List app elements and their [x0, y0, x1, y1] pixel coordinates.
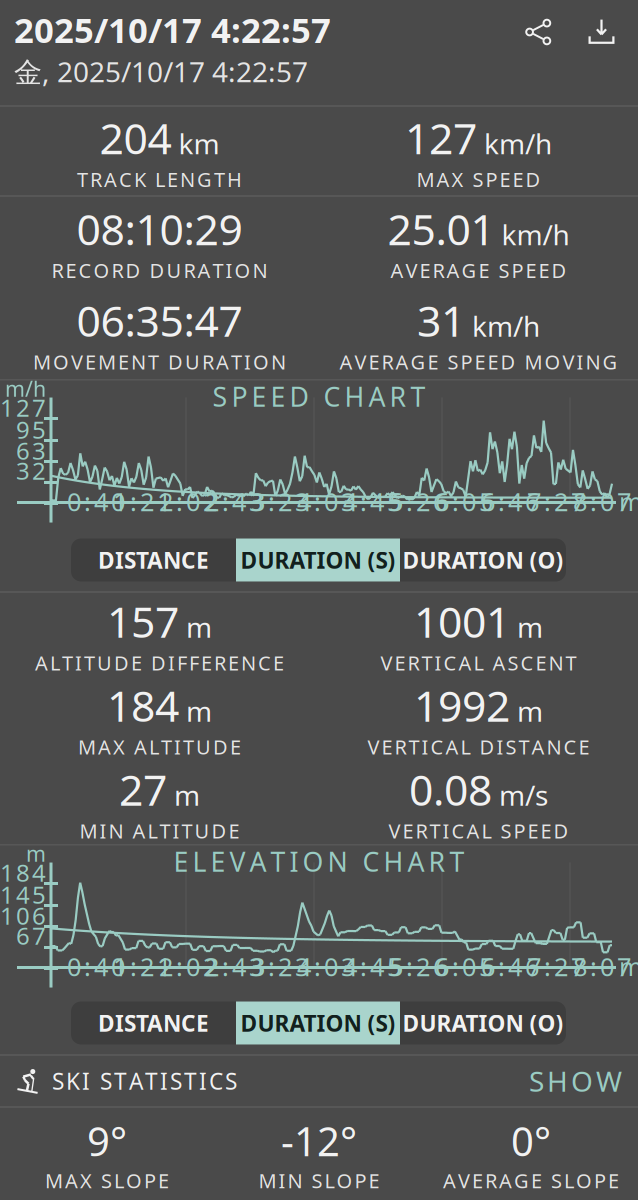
staticText: T R A C K L E N G T H — [77, 166, 242, 193]
staticText: 27 — [119, 761, 167, 818]
staticText: m — [174, 776, 200, 813]
staticText: E L E V A T I O N C H A R T — [173, 844, 464, 879]
staticText: DURATION (O) — [402, 1008, 563, 1038]
staticText: 金, 2025/10/17 4:22:57 — [14, 53, 308, 90]
button[interactable]: DURATION (S) — [236, 1001, 400, 1044]
button[interactable]: S K I S T A T I S T I C S — [0, 1055, 638, 1106]
staticText: 2 : 4 3 — [205, 950, 263, 983]
staticText: 6 : 0 5 — [435, 950, 493, 983]
button[interactable]: Download — [577, 7, 626, 56]
staticText: 31 — [417, 292, 465, 349]
staticText: 3 : 2 3 — [251, 950, 309, 983]
staticText: M A X S P E E D — [416, 166, 540, 193]
staticText: R E C O R D D U R A T I O N — [51, 257, 267, 284]
staticText: 1001 — [414, 593, 510, 650]
staticText: m — [26, 839, 46, 868]
staticText: 6 : 4 6 — [481, 485, 539, 518]
staticText: 1992 — [414, 677, 510, 734]
staticText: 25.01 — [387, 200, 494, 257]
staticText: M O V E M E N T D U R A T I O N — [33, 349, 286, 375]
staticText: A V E R A G E S P E E D — [390, 257, 566, 284]
staticText: 7 : 2 7 — [527, 485, 585, 518]
staticText: 1 0 6 — [0, 900, 46, 931]
staticText: 1 : 2 1 — [113, 950, 171, 983]
staticText: A V E R A G E S L O P E — [443, 1167, 619, 1194]
staticText: V E R T I C A L A S C E N T — [380, 650, 576, 676]
button[interactable]: DURATION (O) — [400, 538, 566, 581]
staticText: 2 : 0 2 — [159, 485, 217, 518]
staticText: 0° — [511, 1114, 551, 1167]
staticText: m — [619, 485, 638, 518]
staticText: S H O W — [529, 1062, 622, 1100]
staticText: km/h — [501, 216, 569, 253]
staticText: 0.08 — [409, 761, 492, 818]
staticText: -12° — [281, 1114, 357, 1167]
staticText: 5 : 2 6 — [389, 485, 447, 518]
staticText: 6 : 4 6 — [481, 950, 539, 983]
staticText: 2 : 0 2 — [159, 950, 217, 983]
staticText: 7 : 2 7 — [527, 950, 585, 983]
staticText: 06:35:47 — [76, 292, 242, 349]
staticText: 0 : 4 0 — [67, 485, 125, 518]
staticText: M A X S L O P E — [45, 1167, 169, 1194]
staticText: 1 4 5 — [0, 879, 46, 910]
staticText: 0 : 4 0 — [67, 950, 125, 983]
staticText: DURATION (S) — [240, 1008, 395, 1038]
staticText: A V E R A G E S P E E D M O V I N G — [339, 349, 617, 375]
staticText: 6 7 — [16, 920, 46, 951]
staticText: 5 : 2 6 — [389, 950, 447, 983]
staticText: 3 2 — [16, 455, 46, 486]
staticText: 4 : 4 5 — [343, 950, 401, 983]
staticText: 4 : 0 3 — [297, 950, 355, 983]
staticText: 2 : 4 3 — [205, 485, 263, 518]
staticText: m/s — [499, 776, 548, 813]
staticText: 4 : 0 3 — [297, 485, 355, 518]
button[interactable]: DURATION (S) — [236, 538, 400, 581]
staticText: 1 : 2 1 — [113, 485, 171, 518]
staticText: km — [178, 125, 219, 162]
staticText: 1 8 4 — [0, 857, 46, 888]
staticText: m — [517, 608, 543, 645]
staticText: km/h — [484, 125, 552, 162]
staticText: m/h — [5, 374, 46, 403]
staticText: DURATION (O) — [402, 545, 563, 575]
staticText: M A X A L T I T U D E — [78, 734, 241, 760]
staticText: m — [619, 950, 638, 983]
staticText: m — [517, 692, 543, 729]
button[interactable]: Share — [514, 7, 563, 56]
staticText: 8 : 0 7 — [573, 950, 631, 983]
staticText: 8 : 0 7 — [573, 485, 631, 518]
button[interactable]: DISTANCE — [71, 538, 236, 581]
staticText: 1 2 7 — [0, 392, 46, 423]
staticText: m — [186, 692, 212, 729]
staticText: 6 : 0 5 — [435, 485, 493, 518]
staticText: V E R T I C A L S P E E D — [388, 818, 568, 844]
staticText: S K I S T A T I S T I C S — [52, 1066, 237, 1096]
staticText: 9° — [87, 1114, 127, 1167]
staticText: m — [186, 608, 212, 645]
staticText: M I N S L O P E — [258, 1167, 379, 1194]
staticText: 184 — [107, 677, 179, 734]
staticText: 3 : 2 3 — [251, 485, 309, 518]
staticText: V E R T I C A L D I S T A N C E — [367, 734, 589, 760]
staticText: DURATION (S) — [240, 545, 395, 575]
staticText: km/h — [472, 307, 540, 344]
button[interactable]: DURATION (O) — [400, 1001, 566, 1044]
button[interactable]: DISTANCE — [71, 1001, 236, 1044]
staticText: M I N A L T I T U D E — [79, 818, 239, 844]
staticText: 08:10:29 — [76, 200, 242, 257]
staticText: 9 5 — [16, 414, 46, 445]
staticText: 157 — [107, 593, 179, 650]
staticText: 2025/10/17 4:22:57 — [14, 6, 331, 52]
staticText: A L T I T U D E D I F F E R E N C E — [35, 650, 284, 676]
staticText: 127 — [405, 109, 477, 166]
staticText: 204 — [99, 109, 171, 166]
staticText: DISTANCE — [98, 1008, 209, 1038]
staticText: DISTANCE — [98, 545, 209, 575]
staticText: 4 : 4 5 — [343, 485, 401, 518]
staticText: S P E E D C H A R T — [212, 379, 425, 414]
staticText: 6 3 — [16, 435, 46, 466]
